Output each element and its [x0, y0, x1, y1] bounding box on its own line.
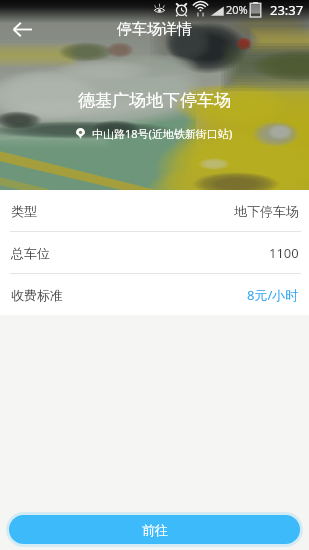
staticText: 中山路18号(近地铁新街口站): [92, 126, 233, 141]
button[interactable]: 前往: [9, 515, 300, 544]
staticText: 类型: [11, 203, 37, 219]
staticText: 20%: [226, 2, 248, 17]
button[interactable]: 类型: [0, 190, 309, 231]
staticText: 收费标准: [11, 287, 63, 303]
button[interactable]: 收费标准: [0, 274, 309, 315]
staticText: 前往: [142, 522, 168, 538]
staticText: 停车场详情: [44, 20, 265, 39]
button[interactable]: Back: [0, 18, 44, 40]
staticText: 1100: [269, 244, 299, 262]
staticText: 地下停车场: [234, 203, 299, 219]
staticText: 德基广场地下停车场: [78, 90, 231, 111]
staticText: 23:37: [270, 1, 304, 19]
button[interactable]: 总车位: [0, 232, 309, 273]
staticText: 8元/小时: [247, 286, 299, 304]
staticText: 总车位: [11, 245, 50, 261]
